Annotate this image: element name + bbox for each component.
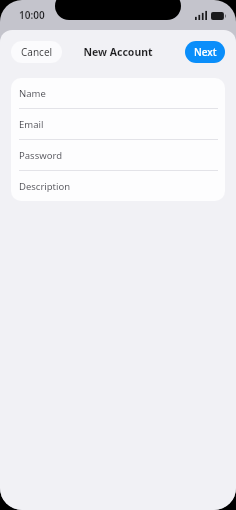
button[interactable]: Name	[11, 78, 225, 108]
staticText: Password	[19, 149, 62, 162]
staticText: Description	[19, 180, 71, 193]
button[interactable]: Cancel	[11, 41, 62, 63]
staticText: Next	[194, 45, 217, 59]
staticText: 10:00	[19, 8, 45, 22]
button[interactable]: Email	[11, 109, 225, 139]
staticText: Email	[19, 118, 44, 131]
staticText: Cancel	[21, 45, 53, 59]
button[interactable]: Password	[11, 140, 225, 170]
staticText: New Account	[83, 45, 153, 59]
staticText: Name	[19, 87, 46, 100]
button[interactable]: Description	[11, 171, 225, 201]
button[interactable]: Next	[185, 41, 225, 63]
